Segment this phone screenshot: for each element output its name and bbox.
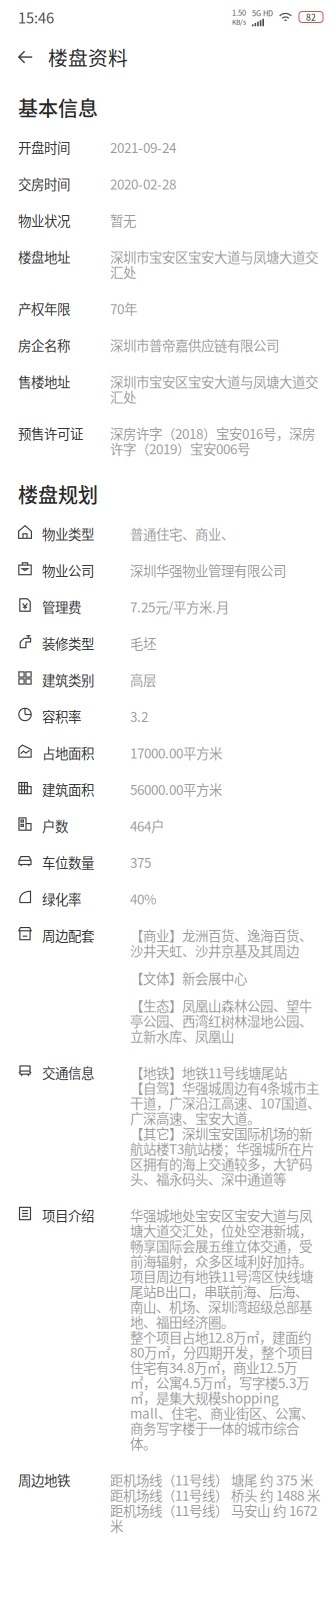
- staticText: 开盘时间: [18, 137, 70, 157]
- staticText: 深圳华强物业管理有限公司: [130, 560, 286, 580]
- staticText: 3.2: [130, 706, 148, 726]
- staticText: 基本信息: [18, 93, 98, 122]
- staticText: 深房许字（2018）宝安016号，深房许字（2019）宝安006号: [110, 423, 315, 458]
- staticText: 7.25元/平方米.月: [130, 597, 229, 616]
- staticText: 70年: [110, 299, 137, 318]
- staticText: 建筑面积: [42, 779, 94, 799]
- staticText: 深圳市宝安区宝安大道与凤塘大道交汇处: [110, 247, 318, 282]
- staticText: 车位数量: [42, 852, 94, 872]
- staticText: 管理费: [42, 597, 81, 616]
- staticText: 物业状况: [18, 210, 70, 230]
- staticText: 物业类型: [42, 524, 94, 543]
- staticText: 56000.00平方米: [130, 779, 222, 799]
- staticText: 距机场线（11号线） 塘尾 约 375 米 距机场线（11号线） 桥头 约 14…: [110, 1470, 320, 1535]
- staticText: 【生态】凤凰山森林公园、望牛亭公园、西湾红树林湿地公园、立新水库、凤凰山: [130, 996, 312, 1046]
- staticText: 占地面积: [42, 743, 94, 762]
- staticText: 产权年限: [18, 299, 70, 318]
- staticText: 2020-02-28: [110, 174, 176, 193]
- staticText: 深圳市普帝嘉供应链有限公司: [110, 335, 279, 355]
- staticText: 普通住宅、商业、: [130, 524, 234, 543]
- staticText: KB/s: [232, 17, 246, 27]
- staticText: 交通信息: [42, 1063, 94, 1082]
- staticText: 暂无: [110, 210, 136, 230]
- staticText: 1.50: [232, 7, 246, 18]
- staticText: 项目介绍: [42, 1205, 94, 1225]
- staticText: 交房时间: [18, 174, 70, 193]
- staticText: 464户: [130, 816, 164, 835]
- staticText: 82: [306, 11, 316, 23]
- staticText: 楼盘地址: [18, 247, 70, 266]
- staticText: 深圳市宝安区宝安大道与凤塘大道交汇处: [110, 372, 318, 406]
- staticText: 周边配套: [42, 925, 94, 945]
- staticText: 房企名称: [18, 335, 70, 355]
- staticText: 容积率: [42, 706, 81, 726]
- staticText: 华强城地处宝安区宝安大道与凤塘大道交汇处，位处空港新城，畅享国际会展五维立体交通…: [130, 1205, 314, 1453]
- staticText: 户数: [42, 816, 68, 835]
- staticText: 楼盘资料: [48, 43, 128, 71]
- staticText: 375: [130, 852, 151, 872]
- staticText: 毛坯: [130, 633, 156, 653]
- staticText: 15:46: [18, 6, 54, 28]
- staticText: 【文体】新会展中心: [130, 968, 247, 988]
- staticText: 40%: [130, 889, 156, 908]
- staticText: 周边地铁: [18, 1470, 70, 1489]
- staticText: 5G HD: [252, 8, 273, 18]
- staticText: 建筑类别: [42, 670, 94, 689]
- staticText: 售楼地址: [18, 372, 70, 391]
- staticText: 装修类型: [42, 633, 94, 653]
- staticText: 绿化率: [42, 889, 81, 908]
- staticText: 楼盘规划: [18, 479, 98, 508]
- button[interactable]: Back: [0, 34, 48, 80]
- staticText: 17000.00平方米: [130, 743, 222, 762]
- staticText: 物业公司: [42, 560, 94, 580]
- staticText: 高层: [130, 670, 156, 689]
- staticText: 【商业】龙洲百货、逸海百货、沙井天虹、沙井京基及其周边: [130, 925, 312, 960]
- staticText: 2021-09-24: [110, 137, 176, 157]
- staticText: 【地铁】地铁11号线塘尾站 【自驾】华强城周边有4条城市主干道，广深沿江高速、1…: [130, 1063, 320, 1188]
- staticText: 预售许可证: [18, 423, 83, 443]
